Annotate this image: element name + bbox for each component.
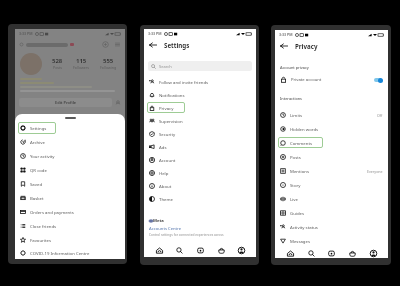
button[interactable]: Orders and payments xyxy=(15,205,125,219)
button[interactable]: Reels xyxy=(194,244,206,256)
staticText: Basket xyxy=(30,195,44,201)
staticText: 3:33 PM xyxy=(279,32,293,37)
button[interactable]: Theme xyxy=(144,192,256,205)
staticText: Close friends xyxy=(30,223,57,229)
staticText: Everyone xyxy=(367,169,383,174)
button[interactable]: Back xyxy=(280,42,288,50)
staticText: Off xyxy=(377,113,383,118)
staticText: Posts xyxy=(290,154,301,160)
staticText: About xyxy=(159,183,172,189)
staticText: Account privacy xyxy=(280,65,309,70)
button[interactable]: Story xyxy=(275,178,388,192)
button[interactable]: Limits xyxy=(275,108,388,122)
staticText: COVID-19 Information Centre xyxy=(30,250,90,256)
staticText: Guides xyxy=(290,210,305,216)
button[interactable]: Live xyxy=(275,192,388,206)
staticText: Account xyxy=(159,157,176,163)
staticText: QR code xyxy=(30,167,47,173)
button[interactable]: Profile xyxy=(235,244,247,256)
button[interactable]: Privacy xyxy=(144,101,256,114)
staticText: Posts xyxy=(53,65,63,70)
button[interactable]: Home xyxy=(153,244,165,256)
button[interactable]: Comments xyxy=(275,136,388,150)
button[interactable]: Account xyxy=(144,153,256,166)
staticText: Theme xyxy=(159,196,173,202)
button[interactable]: Basket xyxy=(15,191,125,205)
button[interactable]: Favourites xyxy=(15,233,125,247)
staticText: Privacy xyxy=(159,105,174,111)
staticText: Saved xyxy=(30,181,43,187)
staticText: Security xyxy=(159,131,176,137)
button[interactable]: Guides xyxy=(275,206,388,220)
button[interactable]: Hidden words xyxy=(275,122,388,136)
staticText: Meta xyxy=(153,218,164,224)
staticText: 528 xyxy=(52,57,63,65)
button[interactable]: About xyxy=(144,179,256,192)
staticText: Mentions xyxy=(290,168,309,174)
staticText: Activity status xyxy=(290,224,318,230)
staticText: Your activity xyxy=(30,153,55,159)
button[interactable]: Ads xyxy=(144,140,256,153)
button[interactable]: Search xyxy=(173,244,185,256)
staticText: Edit Profile xyxy=(55,100,77,105)
button[interactable]: Search xyxy=(305,248,317,258)
button[interactable]: Activity status xyxy=(275,220,388,234)
staticText: Followers xyxy=(73,65,90,70)
button[interactable]: Supervision xyxy=(144,114,256,127)
button[interactable]: Home xyxy=(284,248,296,258)
staticText: Messages xyxy=(290,238,310,244)
staticText: Story xyxy=(290,182,301,188)
button[interactable]: Help xyxy=(144,166,256,179)
button[interactable]: Saved xyxy=(15,177,125,191)
button[interactable]: Notifications xyxy=(144,88,256,101)
staticText: 115 xyxy=(76,57,87,65)
staticText: Follow and invite friends xyxy=(159,79,209,85)
staticText: Favourites xyxy=(30,237,51,243)
button[interactable]: COVID-19 Information Centre xyxy=(15,247,125,259)
staticText: Following xyxy=(100,65,117,70)
staticText: Limits xyxy=(290,112,303,118)
staticText: 3:33 PM xyxy=(19,31,33,36)
staticText: Ads xyxy=(159,144,167,150)
staticText: Comments xyxy=(290,140,313,146)
button[interactable]: Your activity xyxy=(15,149,125,163)
staticText: Archive xyxy=(30,139,45,145)
button[interactable]: Reels xyxy=(325,248,337,258)
button[interactable]: Shop xyxy=(215,244,227,256)
button[interactable]: Profile xyxy=(367,248,379,258)
staticText: Control settings for connected experienc… xyxy=(149,233,224,237)
button[interactable]: Mentions xyxy=(275,164,388,178)
staticText: Privacy xyxy=(295,42,318,50)
staticText: Hidden words xyxy=(290,126,319,132)
staticText: Private account xyxy=(291,77,322,83)
button[interactable]: Follow and invite friends xyxy=(144,75,256,88)
button[interactable]: Posts xyxy=(275,150,388,164)
staticText: Supervision xyxy=(159,118,183,124)
staticText: Accounts Centre xyxy=(149,226,182,232)
staticText: Search xyxy=(159,64,172,69)
staticText: Interactions xyxy=(280,96,302,101)
button[interactable]: Settings xyxy=(15,121,125,135)
staticText: 555 xyxy=(103,57,114,65)
button[interactable]: Security xyxy=(144,127,256,140)
button[interactable]: Edit Profile xyxy=(19,98,112,107)
button[interactable]: Close friends xyxy=(15,219,125,233)
button[interactable]: Search xyxy=(151,61,249,71)
staticText: Live xyxy=(290,196,298,202)
staticText: Orders and payments xyxy=(30,209,74,215)
button[interactable]: Private account xyxy=(280,73,383,86)
button[interactable]: Shop xyxy=(346,248,358,258)
button[interactable]: Archive xyxy=(15,135,125,149)
button[interactable]: Messages xyxy=(275,234,388,248)
button[interactable]: QR code xyxy=(15,163,125,177)
staticText: Settings xyxy=(30,125,47,131)
staticText: 3:33 PM xyxy=(148,31,162,36)
staticText: Help xyxy=(159,170,169,176)
staticText: Notifications xyxy=(159,92,185,98)
staticText: Settings xyxy=(164,41,190,49)
button[interactable]: Back xyxy=(149,41,157,49)
